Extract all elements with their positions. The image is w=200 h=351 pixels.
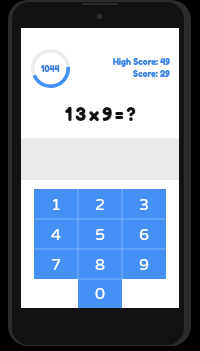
staticText: 2 (95, 195, 106, 214)
staticText: 5 (95, 225, 106, 244)
button[interactable]: 1 (34, 189, 78, 219)
staticText: 8 (95, 255, 106, 274)
staticText: Score: 29 (133, 68, 170, 79)
staticText: 1 (51, 195, 62, 214)
staticText: 0 (95, 284, 106, 303)
other: Remaining time (31, 49, 70, 88)
button[interactable]: 9 (122, 249, 166, 279)
staticText: 6 (139, 225, 150, 244)
button[interactable]: 2 (78, 189, 122, 219)
staticText: 1044 (41, 63, 60, 74)
staticText: 13x9=? (65, 102, 139, 125)
button[interactable]: 4 (34, 219, 78, 249)
staticText: 3 (139, 195, 150, 214)
button[interactable]: 7 (34, 249, 78, 279)
staticText: 9 (139, 255, 150, 274)
button[interactable]: 3 (122, 189, 166, 219)
button[interactable]: 0 (78, 279, 122, 308)
staticText: 4 (51, 225, 62, 244)
button[interactable]: 5 (78, 219, 122, 249)
staticText: High Score: 49 (113, 56, 170, 67)
button[interactable]: 6 (122, 219, 166, 249)
staticText: 7 (51, 255, 62, 274)
button[interactable]: 8 (78, 249, 122, 279)
